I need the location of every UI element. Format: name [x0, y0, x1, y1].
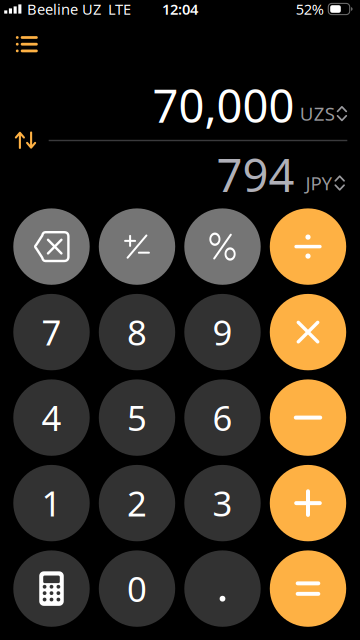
button[interactable]: 0: [99, 550, 175, 627]
button[interactable]: Calculator: [13, 550, 90, 627]
button[interactable]: Equals: [270, 550, 346, 627]
staticText: UZS: [300, 101, 335, 126]
staticText: 12:04: [162, 0, 198, 19]
staticText: 4: [41, 395, 61, 441]
staticText: 3: [212, 480, 232, 526]
button[interactable]: Swap currencies: [3, 118, 47, 162]
button[interactable]: 8: [99, 294, 175, 370]
staticText: 8: [127, 309, 147, 355]
button[interactable]: JPY: [302, 163, 348, 203]
staticText: 9: [212, 309, 232, 355]
button[interactable]: Decimal point: [184, 550, 261, 627]
button[interactable]: Toggle sign: [99, 208, 175, 285]
staticText: 6: [212, 395, 232, 441]
button[interactable]: 1: [13, 465, 90, 541]
staticText: 1: [41, 480, 61, 526]
button[interactable]: 6: [184, 379, 261, 456]
button[interactable]: Percent: [184, 208, 261, 285]
staticText: 794: [216, 144, 294, 204]
button[interactable]: Delete: [13, 208, 90, 285]
button[interactable]: 5: [99, 379, 175, 456]
button[interactable]: Add: [270, 465, 346, 541]
button[interactable]: 4: [13, 379, 90, 456]
button[interactable]: 9: [184, 294, 261, 370]
button[interactable]: 3: [184, 465, 261, 541]
button[interactable]: 7: [13, 294, 90, 370]
button[interactable]: Subtract: [270, 379, 346, 456]
staticText: 52%: [296, 0, 324, 19]
staticText: 0: [127, 566, 147, 612]
button[interactable]: Menu: [4, 23, 50, 65]
button[interactable]: Divide: [270, 208, 346, 285]
staticText: JPY: [305, 171, 332, 195]
staticText: Beeline UZ: [27, 0, 101, 19]
staticText: 5: [127, 395, 147, 441]
staticText: 7: [41, 309, 61, 355]
button[interactable]: Multiply: [270, 294, 346, 370]
staticText: 70,000: [152, 75, 294, 135]
button[interactable]: UZS: [297, 93, 350, 134]
button[interactable]: 2: [99, 465, 175, 541]
staticText: LTE: [108, 0, 131, 19]
staticText: 2: [127, 480, 147, 526]
